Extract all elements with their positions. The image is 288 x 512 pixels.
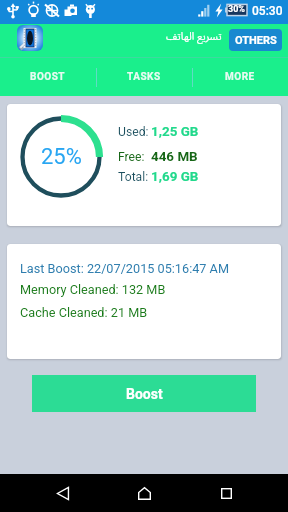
staticText: 25% xyxy=(41,144,82,170)
staticText: Cache Cleaned: 21 MB xyxy=(20,305,148,320)
staticText: 446 MB xyxy=(151,149,198,165)
staticText: 30% xyxy=(228,4,245,15)
staticText: OTHERS xyxy=(235,34,277,47)
button[interactable]: App icon xyxy=(17,25,43,51)
button[interactable]: Back xyxy=(44,474,82,512)
staticText: TASKS xyxy=(127,71,161,83)
staticText: Boost xyxy=(126,386,163,402)
staticText: Memory Cleaned: 132 MB xyxy=(20,282,166,297)
staticText: Free: xyxy=(118,150,145,164)
button[interactable]: MORE xyxy=(192,58,288,96)
staticText: 1,69 GB xyxy=(151,169,199,185)
button[interactable]: Recents xyxy=(207,474,245,512)
staticText: تسريع الهاتف xyxy=(166,26,222,48)
staticText: BOOST xyxy=(30,71,66,83)
button[interactable]: Home xyxy=(125,474,163,512)
staticText: Used: xyxy=(118,125,149,139)
staticText: MORE xyxy=(225,71,255,83)
staticText: 05:30 xyxy=(252,4,283,18)
button[interactable]: TASKS xyxy=(96,58,192,96)
staticText: 1,25 GB xyxy=(151,124,199,140)
button[interactable]: BOOST xyxy=(0,58,96,96)
staticText: Last Boost: 22/07/2015 05:16:47 AM xyxy=(20,261,229,276)
button[interactable]: OTHERS xyxy=(229,29,282,51)
staticText: Total: xyxy=(118,170,149,184)
button[interactable]: Boost xyxy=(32,375,256,412)
